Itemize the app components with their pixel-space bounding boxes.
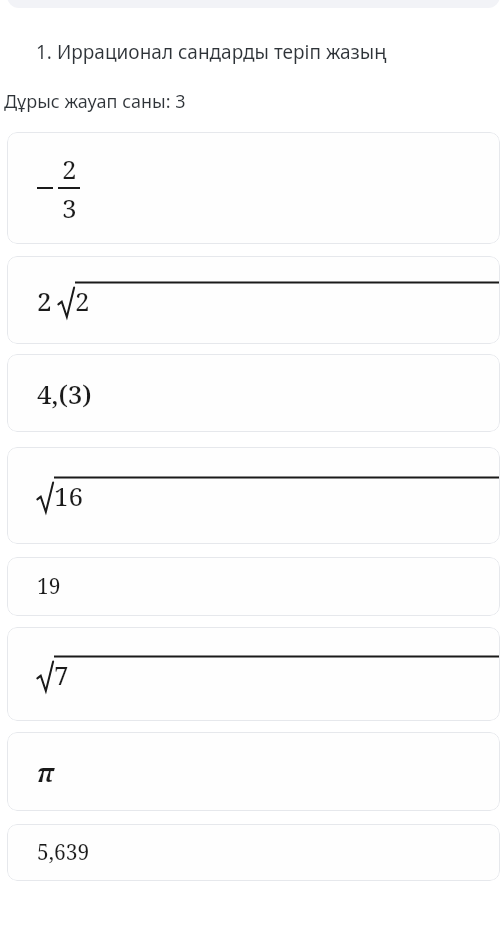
button[interactable]: Option four point three repeating <box>7 354 500 432</box>
staticText: 7 <box>54 657 69 692</box>
staticText: 3 <box>62 190 77 225</box>
staticText: 5,639 <box>37 838 90 867</box>
staticText: 2 <box>75 283 90 318</box>
button[interactable]: Option root seven <box>7 627 500 721</box>
staticText: 2 <box>37 283 52 318</box>
staticText: Дұрыс жауап саны: 3 <box>4 89 186 114</box>
staticText: 19 <box>37 572 61 601</box>
button[interactable]: Option two root two <box>7 256 500 344</box>
button[interactable]: Option nineteen <box>7 557 500 616</box>
button[interactable]: Option root sixteen <box>7 447 500 544</box>
staticText: 16 <box>54 478 84 513</box>
button[interactable]: Option minus two thirds <box>7 132 500 244</box>
staticText: π <box>37 754 55 789</box>
staticText: 4,(3) <box>37 376 92 411</box>
staticText: 2 <box>62 151 77 186</box>
staticText: 1. Иррационал сандарды теріп жазың <box>36 39 387 65</box>
button[interactable]: Option five point six three nine <box>7 824 500 881</box>
button[interactable]: Option pi <box>7 732 500 811</box>
